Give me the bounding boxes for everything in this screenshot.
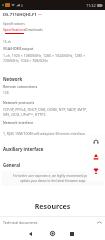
staticText: Technical documents	[3, 220, 38, 225]
staticText: Resources	[0, 202, 105, 212]
button[interactable]: Back	[23, 227, 37, 240]
staticText: 11:32	[86, 3, 96, 8]
staticText: DS-7116HQHI-F1	[3, 12, 37, 18]
button[interactable]: Technical documents	[0, 217, 105, 227]
staticText: General	[3, 162, 21, 168]
staticText: 128	[3, 91, 9, 95]
staticText: Network protocols	[3, 100, 35, 105]
button[interactable]: Recents	[65, 227, 79, 240]
staticText: Auxiliary interface	[3, 146, 44, 152]
staticText: Specifications	[3, 21, 25, 26]
staticText: Network interface	[3, 120, 34, 125]
staticText: Network	[3, 76, 23, 82]
staticText: For better user experience, we highly re…	[2, 174, 104, 183]
button[interactable]: Contact us	[87, 163, 105, 178]
staticText: 16-ch	[3, 40, 12, 44]
staticText: 1-ch, 1920 × 1080/60Hz, 1280 × 1024/60Hz…	[3, 53, 95, 63]
staticText: Remote connections	[3, 84, 38, 89]
staticText: 6	[21, 3, 24, 8]
button[interactable]: Where to buy	[87, 149, 105, 164]
button[interactable]: Downloads	[25, 27, 43, 32]
staticText: Downloads	[25, 27, 43, 32]
staticText: EOL	[38, 12, 43, 15]
staticText: TCP/IP, PPPoE, DHCP, DNS, DDNS, NTP, SAD…	[3, 107, 95, 117]
staticText: VGA/HDMI output	[3, 46, 34, 51]
button[interactable]: Specifications	[3, 27, 26, 34]
button[interactable]: Home	[45, 227, 59, 240]
button[interactable]: Customer support	[87, 134, 105, 149]
staticText: 1, RJ45 10M/100M self-adaptive Ethernet …	[3, 131, 86, 136]
staticText: Specifications	[3, 27, 26, 32]
